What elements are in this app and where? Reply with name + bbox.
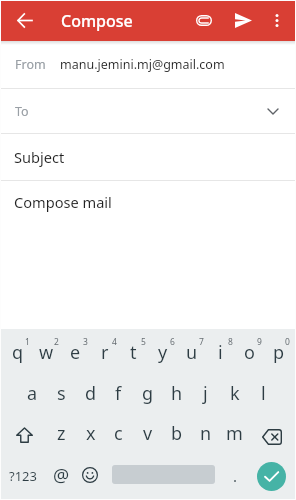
staticText: o — [244, 340, 255, 365]
button[interactable]: k — [220, 369, 249, 410]
button[interactable]: n — [191, 409, 220, 450]
staticText: 0 — [285, 336, 290, 348]
staticText: u — [186, 340, 198, 365]
button[interactable]: d — [76, 369, 105, 410]
staticText: a — [27, 381, 38, 406]
staticText: @ — [53, 463, 70, 488]
button[interactable]: i — [206, 328, 235, 369]
button[interactable]: Space — [106, 453, 220, 495]
button[interactable]: j — [191, 369, 220, 410]
button[interactable]: a — [18, 369, 47, 410]
button[interactable]: Emoji — [76, 454, 104, 496]
button[interactable]: Send — [227, 4, 259, 37]
button[interactable]: Done — [250, 455, 293, 497]
button[interactable]: To — [0, 89, 296, 133]
staticText: g — [142, 381, 154, 406]
staticText: x — [86, 421, 96, 446]
staticText: manu.jemini.mj@gmail.com — [60, 56, 225, 73]
staticText: z — [57, 421, 66, 446]
staticText: p — [273, 340, 285, 365]
button[interactable]: t — [119, 328, 148, 369]
staticText: 4 — [112, 336, 117, 348]
staticText: y — [158, 340, 168, 365]
staticText: r — [101, 340, 109, 365]
staticText: j — [203, 381, 208, 406]
button[interactable]: e — [61, 328, 90, 369]
button[interactable]: h — [162, 369, 191, 410]
button[interactable]: v — [133, 409, 162, 450]
staticText: Subject — [14, 147, 65, 167]
button[interactable]: z — [47, 409, 76, 450]
staticText: k — [230, 381, 240, 406]
staticText: To — [15, 103, 29, 120]
staticText: 8 — [228, 336, 233, 348]
button[interactable]: y — [148, 328, 177, 369]
staticText: Compose — [61, 10, 133, 32]
button[interactable]: b — [162, 409, 191, 450]
staticText: Compose mail — [14, 192, 112, 212]
staticText: 6 — [170, 336, 175, 348]
staticText: w — [39, 340, 54, 365]
button[interactable]: From — [0, 41, 296, 88]
staticText: 1 — [25, 336, 30, 348]
button[interactable]: . — [222, 455, 248, 497]
button[interactable]: c — [104, 409, 133, 450]
button[interactable]: r — [90, 328, 119, 369]
button[interactable]: s — [47, 369, 76, 410]
button[interactable]: Compose mail — [0, 181, 296, 225]
staticText: 5 — [141, 336, 146, 348]
button[interactable]: l — [249, 369, 278, 410]
button[interactable]: Expand recipients — [260, 98, 286, 124]
staticText: d — [85, 381, 97, 406]
button[interactable]: Shift — [3, 414, 46, 455]
staticText: f — [115, 381, 122, 406]
staticText: l — [261, 381, 266, 406]
staticText: 2 — [54, 336, 59, 348]
staticText: 7 — [199, 336, 204, 348]
staticText: s — [57, 381, 66, 406]
staticText: v — [143, 421, 153, 446]
staticText: h — [171, 381, 183, 406]
button[interactable]: u — [177, 328, 206, 369]
staticText: . — [233, 466, 238, 486]
staticText: i — [218, 340, 223, 365]
staticText: 9 — [257, 336, 262, 348]
button[interactable]: Subject — [0, 134, 296, 180]
staticText: From — [15, 56, 46, 73]
staticText: b — [171, 421, 183, 446]
button[interactable]: Attach file — [187, 4, 221, 37]
button[interactable]: g — [133, 369, 162, 410]
button[interactable]: m — [220, 409, 249, 450]
staticText: c — [114, 421, 123, 446]
button[interactable]: o — [235, 328, 264, 369]
staticText: 3 — [83, 336, 88, 348]
button[interactable]: f — [104, 369, 133, 410]
button[interactable]: Navigate up — [7, 4, 43, 37]
staticText: n — [200, 421, 212, 446]
staticText: ?123 — [9, 467, 37, 485]
staticText: e — [70, 340, 81, 365]
button[interactable]: p — [264, 328, 293, 369]
button[interactable]: More options — [262, 4, 292, 37]
staticText: m — [226, 421, 243, 446]
button[interactable]: w — [32, 328, 61, 369]
button[interactable]: @ — [46, 454, 76, 496]
staticText: t — [130, 340, 137, 365]
button[interactable]: Backspace — [250, 416, 293, 457]
button[interactable]: x — [76, 409, 105, 450]
button[interactable]: q — [3, 328, 32, 369]
button[interactable]: ?123 — [0, 455, 45, 497]
staticText: q — [12, 340, 24, 365]
